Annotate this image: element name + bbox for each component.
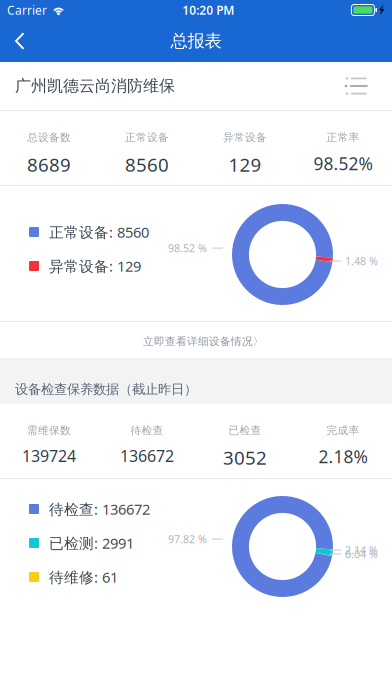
staticText: 98.52% bbox=[313, 152, 372, 175]
staticText: 正常率 bbox=[326, 131, 359, 144]
staticText: 已检查 bbox=[228, 424, 261, 437]
staticText: 98.52 % bbox=[168, 241, 207, 255]
staticText: 8560 bbox=[125, 152, 169, 177]
staticText: 待维修: 61 bbox=[49, 567, 118, 587]
staticText: 总设备数 bbox=[27, 131, 71, 144]
button[interactable]: Back bbox=[0, 21, 42, 61]
staticText: 1.48 % bbox=[345, 254, 378, 268]
staticText: Carrier bbox=[7, 2, 47, 18]
staticText: 待检查 bbox=[130, 424, 163, 437]
staticText: 异常设备 bbox=[223, 131, 267, 144]
staticText: 待检查: 136672 bbox=[49, 499, 150, 519]
staticText: 136672 bbox=[120, 445, 174, 466]
staticText: 8689 bbox=[27, 152, 71, 177]
staticText: 正常设备 bbox=[125, 131, 169, 144]
button[interactable]: 立即查看详细设备情况〉 bbox=[0, 322, 392, 358]
staticText: 需维保数 bbox=[27, 424, 71, 437]
staticText: 广州凯德云尚消防维保 bbox=[15, 76, 175, 96]
staticText: 立即查看详细设备情况〉 bbox=[143, 335, 264, 348]
staticText: 2.14 % bbox=[345, 543, 378, 557]
staticText: 97.82 % bbox=[168, 532, 207, 546]
staticText: 129 bbox=[228, 152, 261, 177]
staticText: 3052 bbox=[223, 445, 267, 470]
staticText: 0.04 % bbox=[345, 547, 378, 561]
staticText: 完成率 bbox=[326, 424, 359, 437]
staticText: 2.18% bbox=[318, 445, 367, 468]
staticText: 设备检查保养数据（截止昨日） bbox=[15, 381, 197, 397]
staticText: 10:20 PM bbox=[182, 2, 234, 18]
button[interactable]: 广州凯德云尚消防维保 bbox=[0, 62, 392, 110]
staticText: 总报表 bbox=[170, 30, 221, 52]
staticText: 已检测: 2991 bbox=[49, 533, 134, 553]
staticText: 139724 bbox=[22, 445, 76, 466]
staticText: 异常设备: 129 bbox=[49, 256, 141, 276]
staticText: 正常设备: 8560 bbox=[49, 222, 149, 242]
